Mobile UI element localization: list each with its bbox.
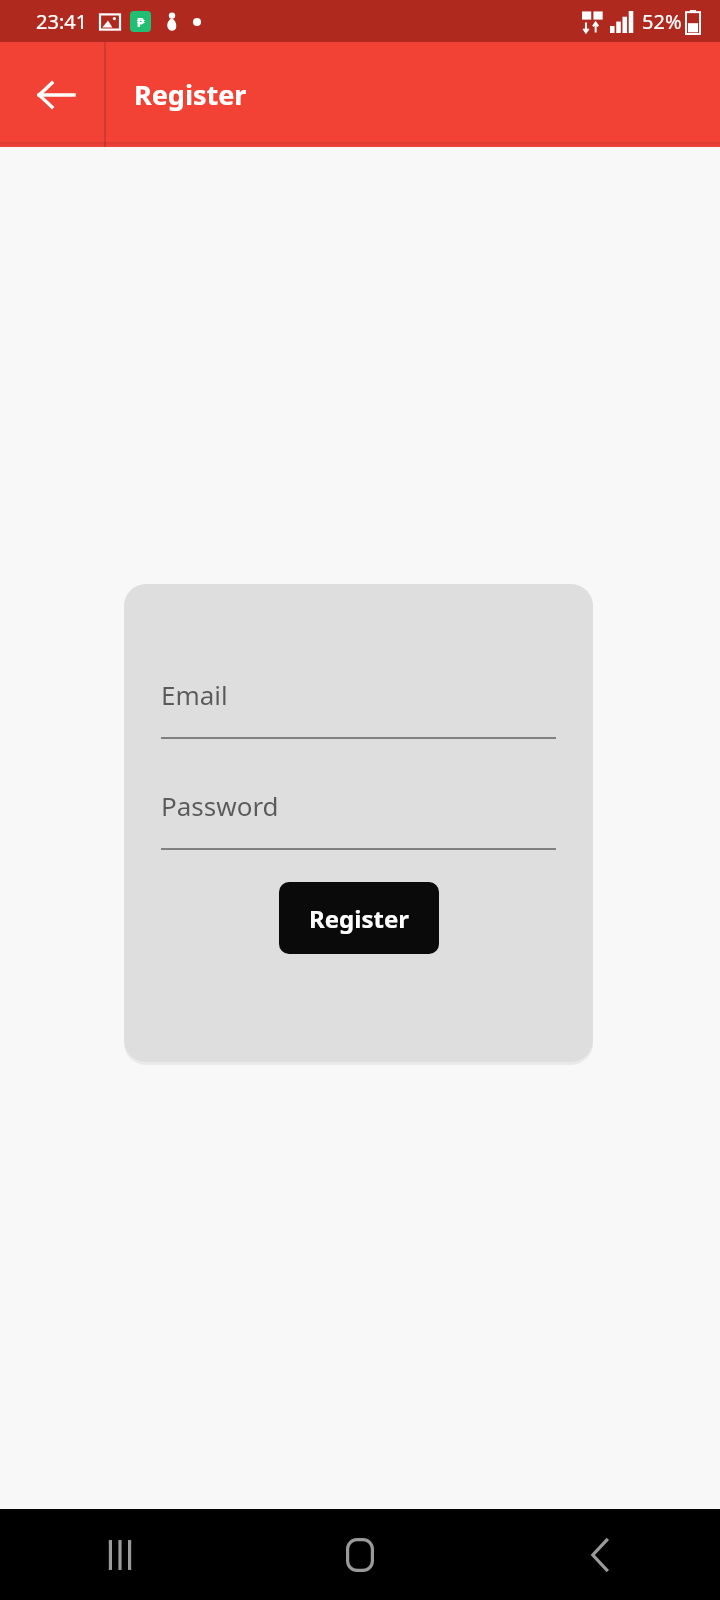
staticText: 52%	[642, 8, 682, 35]
staticText: ₱	[137, 13, 145, 31]
button[interactable]: Password	[161, 779, 556, 850]
button[interactable]: Home	[240, 1509, 480, 1600]
button[interactable]: Back	[14, 53, 98, 137]
button[interactable]: Back	[480, 1509, 720, 1600]
button[interactable]: Recents	[0, 1509, 240, 1600]
staticText: Register	[309, 902, 409, 935]
staticText: Password	[161, 788, 279, 823]
button[interactable]: Register	[279, 882, 439, 954]
staticText: 23:41	[36, 8, 88, 35]
button[interactable]: Email	[161, 668, 556, 739]
staticText: Register	[134, 76, 247, 113]
staticText: Email	[161, 677, 228, 712]
